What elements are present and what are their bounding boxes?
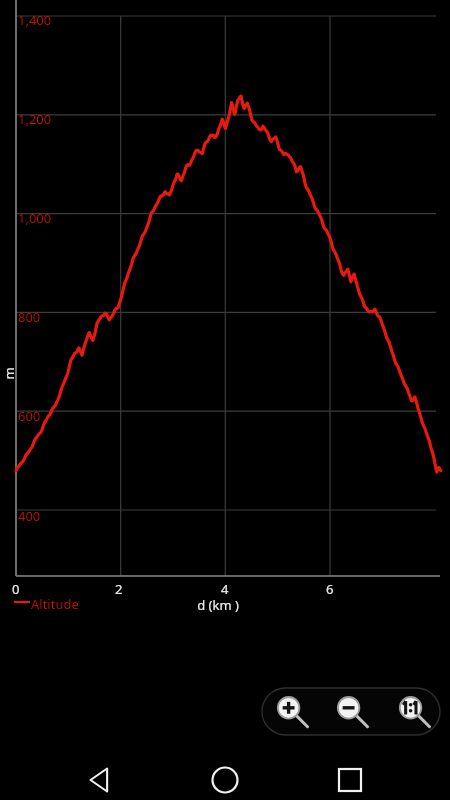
button[interactable]: Reset zoom to 1:1 [393,691,433,731]
staticText: 2 [115,580,123,598]
staticText: 600 [18,407,41,425]
staticText: 4 [221,580,229,598]
staticText: 1,000 [18,209,52,227]
button[interactable]: Altitude [31,595,79,613]
button[interactable]: Zoom out [331,691,371,731]
button[interactable]: Home [203,758,247,800]
button[interactable]: Zoom in [271,691,311,731]
staticText: 1,200 [18,110,52,128]
staticText: 1,400 [18,11,52,29]
staticText: 400 [18,507,41,525]
button[interactable]: Back [78,758,122,800]
staticText: d (km ) [197,596,239,614]
staticText: m [0,366,17,379]
staticText: 800 [18,308,41,326]
staticText: 0 [12,580,20,598]
button[interactable]: Recent apps [328,758,372,800]
staticText: 6 [326,580,334,598]
